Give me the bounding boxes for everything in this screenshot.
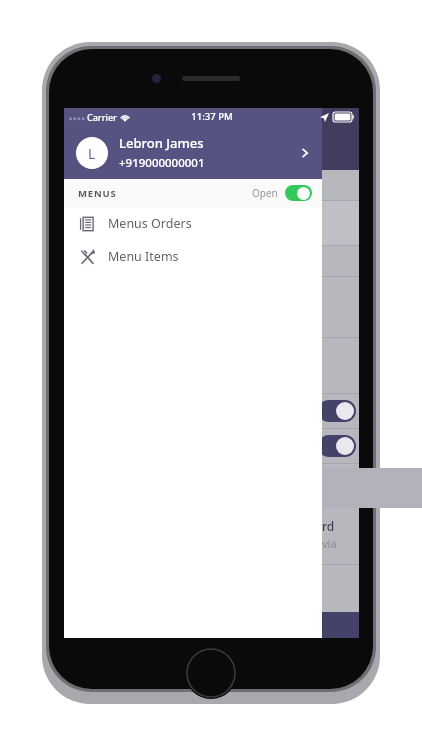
staticText: 11:37 PM: [191, 110, 233, 123]
staticText: L: [88, 144, 96, 163]
button[interactable]: Open: [252, 185, 312, 201]
button[interactable]: L: [64, 108, 322, 179]
button[interactable]: Menu Items: [64, 240, 322, 273]
other: Open profile: [298, 146, 312, 160]
button[interactable]: Menus Orders: [64, 207, 322, 240]
staticText: MENUS: [78, 187, 117, 200]
staticText: +919000000001: [119, 155, 205, 171]
button[interactable]: Toggle: [318, 400, 356, 422]
button[interactable]: Toggle: [318, 435, 356, 457]
staticText: Carrier: [87, 111, 117, 123]
staticText: Menus Orders: [108, 215, 192, 232]
staticText: Open: [252, 186, 278, 200]
staticText: via: [322, 536, 337, 551]
staticText: Lebron James: [119, 134, 204, 152]
staticText: rd: [322, 518, 335, 534]
staticText: Menu Items: [108, 248, 179, 265]
